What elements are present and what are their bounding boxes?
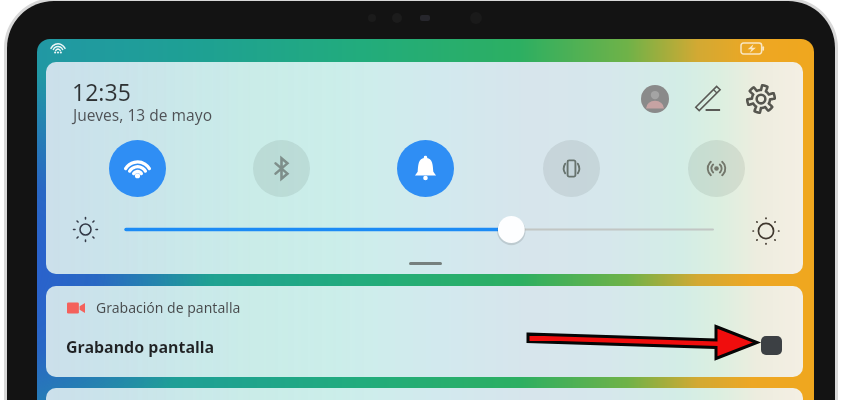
button[interactable]: Vibration [543, 140, 600, 197]
button[interactable]: Stop screen recording [761, 336, 782, 355]
button[interactable]: Edit [694, 84, 723, 113]
button[interactable]: Notifications [397, 140, 454, 197]
staticText: Grabando pantalla [66, 336, 215, 358]
button[interactable]: Hotspot [688, 140, 745, 197]
button[interactable]: User account [641, 85, 669, 113]
staticText: 12:35 [72, 76, 131, 107]
button[interactable]: Settings [746, 84, 776, 114]
button[interactable]: Wi-Fi [109, 140, 166, 197]
staticText: Grabación de pantalla [96, 298, 241, 317]
button[interactable]: Bluetooth [253, 140, 310, 197]
staticText: Jueves, 13 de mayo [73, 104, 213, 125]
